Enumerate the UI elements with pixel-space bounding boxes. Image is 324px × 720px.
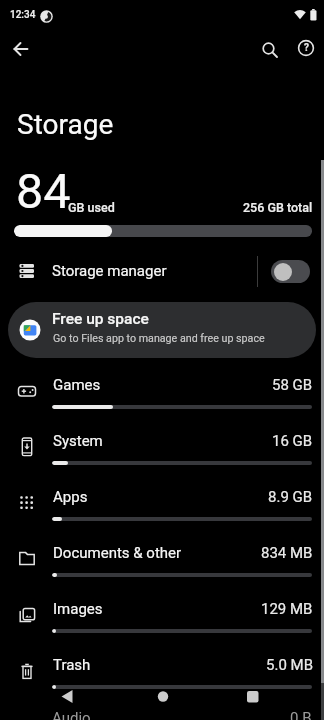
button[interactable]: ?: [292, 34, 320, 62]
button[interactable]: Free up space: [8, 302, 316, 358]
staticText: 8.9 GB: [268, 488, 313, 506]
button[interactable]: [228, 684, 276, 710]
button[interactable]: [42, 684, 90, 710]
staticText: Storage manager: [52, 262, 167, 280]
staticText: ?: [304, 42, 309, 54]
staticText: Free up space: [52, 310, 149, 328]
staticText: 5.0 MB: [266, 656, 313, 674]
staticText: 256 GB total: [243, 200, 313, 215]
button[interactable]: Games: [0, 368, 324, 424]
staticText: Documents & other: [53, 544, 182, 562]
button[interactable]: [7, 35, 35, 63]
button[interactable]: [271, 260, 310, 283]
staticText: 0 B: [290, 709, 312, 720]
staticText: 129 MB: [261, 600, 313, 618]
staticText: 834 MB: [261, 544, 313, 562]
staticText: Storage: [17, 108, 114, 141]
button[interactable]: Storage manager: [0, 250, 324, 292]
staticText: Images: [53, 600, 103, 618]
button[interactable]: Images: [0, 592, 324, 648]
staticText: 12:34: [10, 9, 36, 21]
staticText: 16 GB: [272, 432, 313, 450]
button[interactable]: [256, 36, 284, 64]
staticText: Games: [53, 376, 101, 394]
staticText: 58 GB: [272, 376, 313, 394]
button[interactable]: Apps: [0, 480, 324, 536]
button[interactable]: System: [0, 424, 324, 480]
button[interactable]: [138, 684, 186, 710]
staticText: Audio: [52, 709, 91, 720]
staticText: GB used: [68, 200, 115, 215]
button[interactable]: Trash: [0, 648, 324, 704]
staticText: Trash: [53, 656, 91, 674]
staticText: 84: [16, 163, 71, 220]
button[interactable]: Documents & other: [0, 536, 324, 592]
staticText: System: [53, 432, 103, 450]
staticText: Go to Files app to manage and free up sp…: [53, 332, 265, 345]
staticText: Apps: [53, 488, 88, 506]
